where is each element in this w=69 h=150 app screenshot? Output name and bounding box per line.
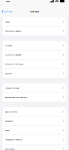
staticText: Background App Refresh (5, 96, 27, 98)
staticText: General (30, 10, 39, 13)
staticText: Language & Region (5, 138, 22, 141)
staticText: AirDrop (5, 44, 12, 47)
button[interactable]: Settings (0, 9, 12, 14)
staticText: Software Update (5, 30, 21, 32)
button[interactable]: AirDrop (2, 41, 66, 50)
button[interactable]: About (2, 17, 66, 26)
staticText: Fonts (5, 129, 10, 132)
button[interactable]: Keyboard (2, 116, 66, 125)
staticText: 9:41 (6, 0, 10, 3)
staticText: Dictionary (5, 147, 15, 150)
staticText: AirPlay & Handoff (5, 53, 21, 56)
button[interactable]: Picture in Picture (2, 60, 66, 69)
button[interactable]: Fonts (2, 126, 66, 135)
staticText: About (5, 20, 10, 23)
button[interactable]: Language & Region (2, 135, 66, 144)
button[interactable]: Dictionary (2, 144, 66, 150)
staticText: Keyboard (5, 120, 13, 122)
staticText: iPhone Storage (5, 86, 19, 89)
staticText: Date & Time (5, 110, 17, 113)
staticText: CarPlay (5, 72, 12, 75)
button[interactable]: iPhone Storage (2, 83, 66, 92)
button[interactable]: Software Update (2, 26, 66, 35)
button[interactable]: Date & Time (2, 107, 66, 116)
button[interactable]: AirPlay & Handoff (2, 50, 66, 59)
staticText: Picture in Picture (5, 63, 23, 65)
staticText: Settings (4, 10, 12, 13)
button[interactable]: CarPlay (2, 69, 66, 78)
button[interactable]: Background App Refresh (2, 93, 66, 102)
